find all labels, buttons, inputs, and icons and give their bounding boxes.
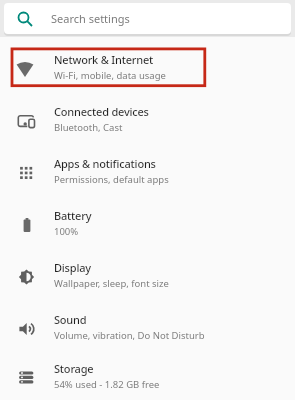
staticText: Search settings [51, 11, 130, 26]
button[interactable]: Storage [0, 355, 295, 400]
staticText: Wi-Fi, mobile, data usage [54, 69, 166, 82]
staticText: Apps & notifications [54, 156, 156, 171]
button[interactable]: Search settings [4, 3, 291, 34]
button[interactable]: Network & Internet [0, 43, 295, 95]
staticText: Permissions, default apps [54, 173, 169, 186]
button[interactable]: Display [0, 251, 295, 303]
staticText: 54% used - 1.82 GB free [54, 378, 160, 391]
staticText: Bluetooth, Cast [54, 121, 123, 134]
button[interactable]: Connected devices [0, 95, 295, 147]
staticText: Storage [54, 361, 94, 376]
staticText: 100% [54, 225, 79, 238]
staticText: Battery [54, 208, 92, 223]
staticText: Volume, vibration, Do Not Disturb [54, 329, 205, 342]
staticText: Network & Internet [54, 52, 154, 67]
button[interactable]: Sound [0, 303, 295, 355]
button[interactable]: Apps & notifications [0, 147, 295, 199]
button[interactable]: Battery [0, 199, 295, 251]
staticText: Sound [54, 312, 87, 327]
staticText: Display [54, 260, 91, 275]
staticText: Connected devices [54, 104, 149, 119]
staticText: Wallpaper, sleep, font size [54, 277, 169, 290]
